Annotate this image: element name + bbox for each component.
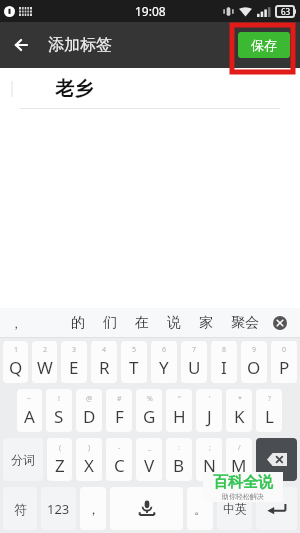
staticText: 聚会 (231, 314, 259, 332)
button[interactable]: 8 (211, 341, 237, 383)
button[interactable]: ) (76, 438, 102, 481)
staticText: - (118, 443, 121, 453)
staticText: " (178, 394, 181, 404)
button[interactable]: 2 (32, 341, 57, 383)
staticText: 分词 (11, 452, 35, 467)
button[interactable]: 们 (101, 311, 119, 335)
staticText: ' (209, 394, 211, 404)
staticText: 在 (135, 314, 149, 332)
staticText: V (144, 454, 155, 477)
button[interactable]: ' (196, 389, 222, 432)
staticText: 添加标签 (48, 35, 112, 55)
staticText: A (24, 405, 35, 428)
staticText: 家 (199, 314, 213, 332)
button[interactable]: 7 (181, 341, 207, 383)
staticText: L (265, 405, 274, 428)
button[interactable]: @ (76, 389, 102, 432)
button[interactable]: 符 (3, 487, 37, 530)
staticText: 们 (103, 314, 117, 332)
button[interactable]: 中英 (217, 487, 252, 530)
button[interactable]: " (166, 389, 192, 432)
button[interactable]: 百科全说 (203, 472, 283, 502)
button[interactable]: # (106, 389, 132, 432)
staticText: W (37, 356, 53, 379)
button[interactable]: ? (256, 389, 282, 432)
button[interactable]: 6 (151, 341, 177, 383)
staticText: R (99, 356, 110, 379)
button[interactable]: 5 (121, 341, 147, 383)
button[interactable]: ; (196, 438, 222, 481)
button[interactable]: 聚会 (229, 311, 261, 335)
staticText: @ (86, 394, 93, 404)
staticText: ? (268, 394, 272, 404)
staticText: 4 (102, 345, 107, 355)
button[interactable]: Enter (256, 487, 297, 530)
staticText: 中英 (223, 501, 247, 516)
button[interactable]: Backspace (256, 438, 297, 481)
staticText: ， (10, 316, 22, 331)
staticText: ! (58, 394, 60, 404)
staticText: Z (55, 454, 65, 477)
staticText: 1 (14, 345, 19, 355)
staticText: ) (88, 443, 91, 453)
button[interactable]: * (226, 389, 252, 432)
button[interactable]: 9 (241, 341, 267, 383)
staticText: 百科全说 (213, 473, 273, 492)
staticText: T (129, 356, 139, 379)
button[interactable]: 1 (3, 341, 28, 383)
staticText: S (54, 405, 64, 428)
staticText: ， (87, 501, 100, 517)
staticText: 3 (72, 345, 77, 355)
button[interactable]: Back (0, 23, 44, 67)
staticText: ( (59, 443, 62, 453)
staticText: E (69, 356, 79, 379)
button[interactable]: Space / Voice input (110, 487, 183, 530)
staticText: % (147, 394, 153, 404)
staticText: H (173, 405, 186, 428)
button[interactable]: 说 (165, 311, 183, 335)
button[interactable]: % (136, 389, 162, 432)
button[interactable]: 家 (197, 311, 215, 335)
staticText: G (143, 405, 156, 428)
button[interactable]: 分词 (3, 438, 43, 481)
staticText: X (84, 454, 94, 477)
staticText: F (115, 405, 124, 428)
staticText: Q (9, 356, 23, 379)
staticText: 123 (47, 500, 70, 518)
button[interactable]: Close suggestions (269, 312, 291, 334)
staticText: 6 (162, 345, 167, 355)
button[interactable]: : (166, 438, 192, 481)
staticText: # (117, 394, 122, 404)
button[interactable]: 的 (69, 311, 87, 335)
button[interactable]: 4 (91, 341, 117, 383)
staticText: ~ (27, 394, 32, 404)
button[interactable]: 123 (41, 487, 76, 530)
staticText: M (231, 454, 247, 477)
staticText: 的 (71, 314, 85, 332)
button[interactable]: 3 (61, 341, 87, 383)
button[interactable]: ~ (17, 389, 42, 432)
button[interactable]: - (106, 438, 132, 481)
staticText: J (207, 405, 212, 428)
button[interactable]: ( (47, 438, 72, 481)
staticText: I (221, 356, 227, 379)
button[interactable]: / (226, 438, 252, 481)
staticText: 19:08 (135, 3, 166, 19)
button[interactable]: _ (136, 438, 162, 481)
button[interactable]: ! (46, 389, 72, 432)
staticText: _ (148, 443, 152, 453)
staticText: * (238, 394, 242, 404)
staticText: 63 (281, 6, 291, 17)
staticText: P (279, 356, 290, 379)
staticText: N (203, 454, 216, 477)
staticText: D (83, 405, 96, 428)
staticText: B (173, 454, 185, 477)
button[interactable]: ， (80, 487, 106, 530)
button[interactable]: 在 (133, 311, 151, 335)
staticText: 符 (14, 501, 27, 517)
button[interactable]: 。 (187, 487, 213, 530)
staticText: Y (159, 356, 169, 379)
staticText: 7 (192, 345, 197, 355)
button[interactable]: 保存 (238, 32, 290, 58)
button[interactable]: 0 (271, 341, 297, 383)
